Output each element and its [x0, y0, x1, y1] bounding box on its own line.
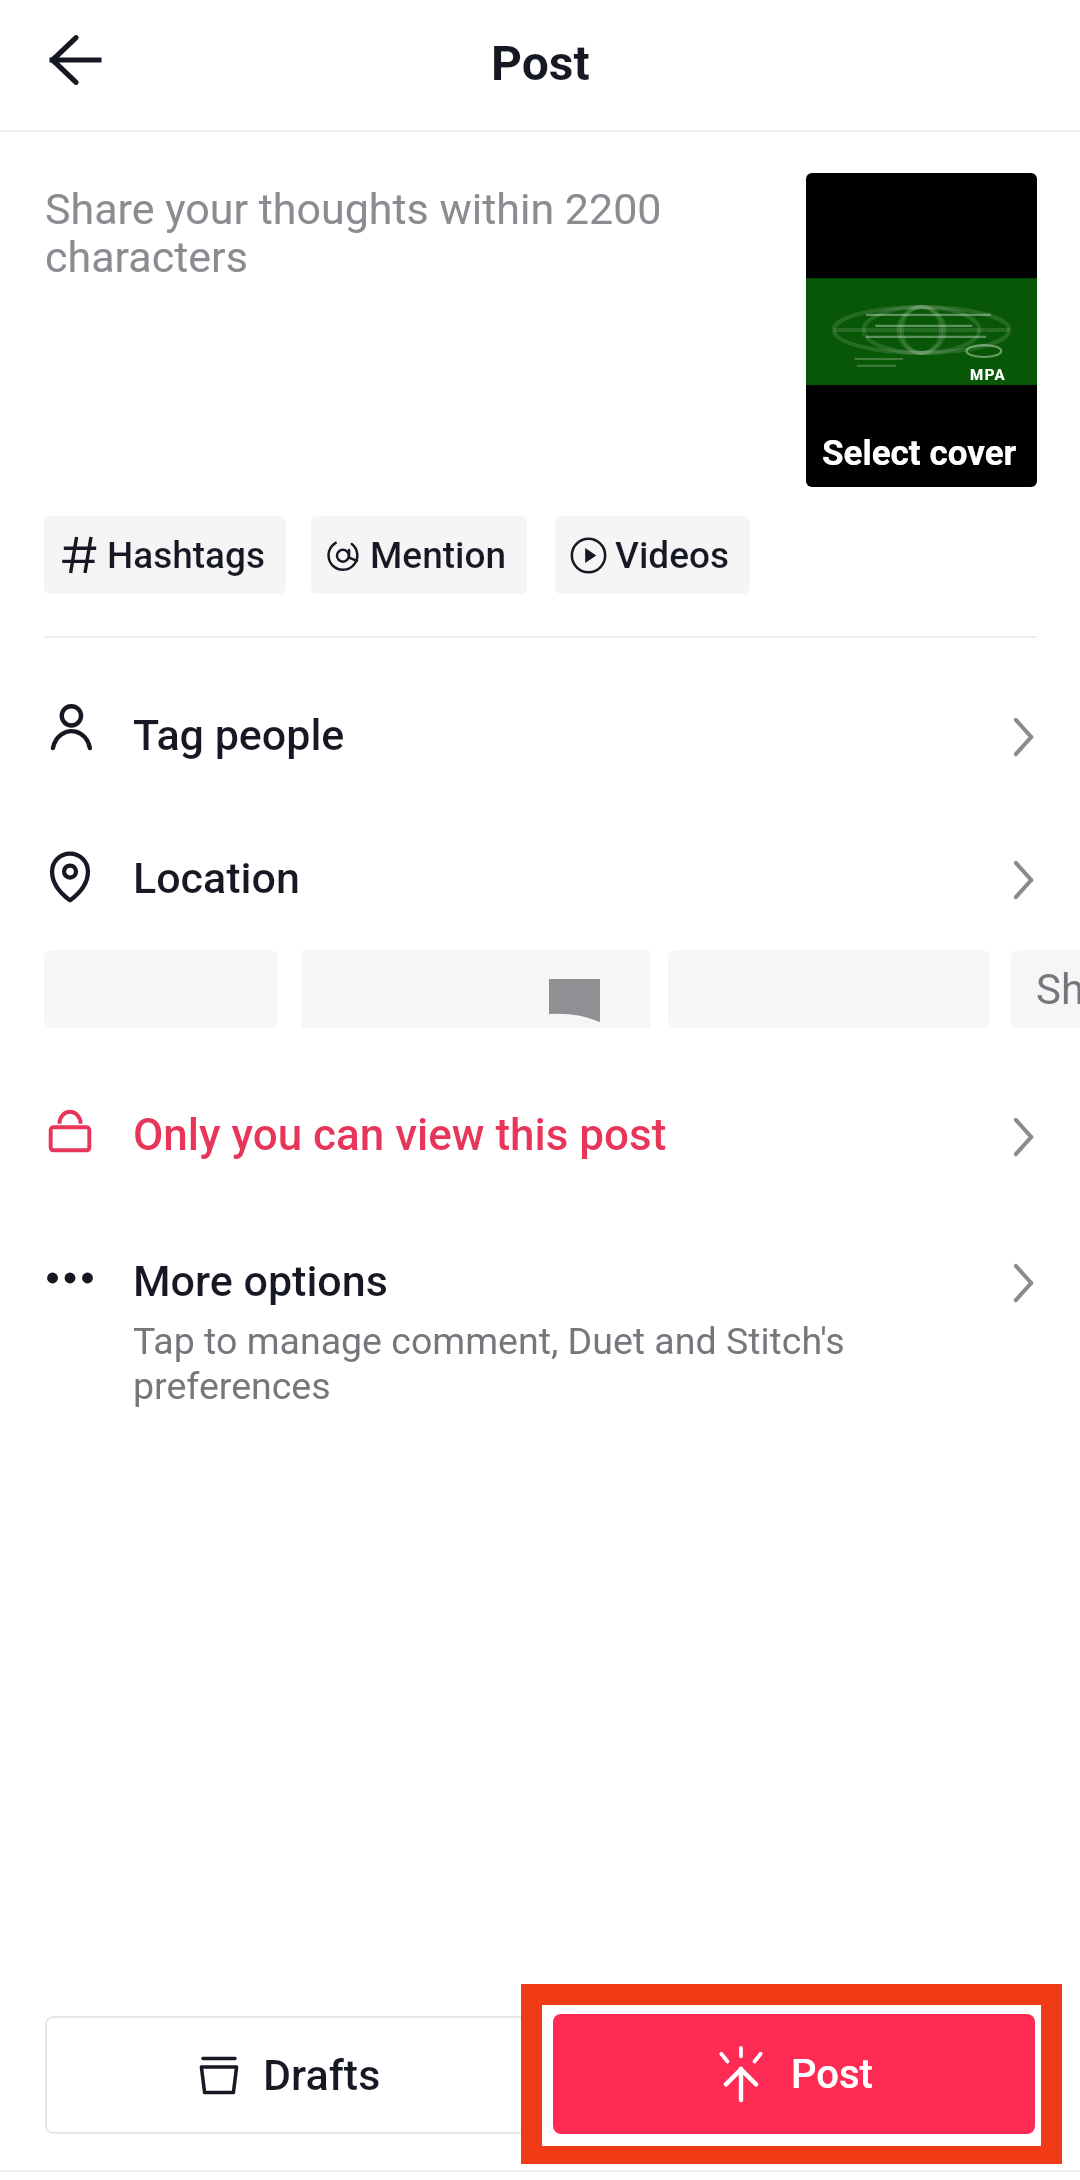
button[interactable]: Drafts	[45, 2016, 535, 2134]
button[interactable]: More options	[0, 1218, 1080, 1428]
staticText: Tag people	[133, 710, 345, 760]
staticText: Hashtags	[107, 534, 266, 577]
staticText: Location	[133, 853, 300, 903]
staticText: Post	[791, 2051, 873, 2098]
staticText: Share your thoughts within 2200 characte…	[45, 184, 713, 282]
button[interactable]: Only you can view this post	[0, 1072, 1080, 1198]
button[interactable]: Suggested option	[302, 950, 650, 1028]
button[interactable]: Hashtags	[44, 516, 286, 594]
staticText: Select cover	[822, 433, 1017, 474]
button[interactable]: Back	[26, 11, 124, 109]
staticText: Only you can view this post	[133, 1109, 667, 1161]
staticText: Post	[491, 35, 590, 91]
button[interactable]: Tag people	[0, 672, 1080, 798]
staticText: Drafts	[263, 2050, 381, 2100]
staticText: More options	[133, 1256, 388, 1306]
button[interactable]: Mention	[311, 516, 527, 594]
staticText: Tap to manage comment, Duet and Stitch's…	[133, 1319, 873, 1409]
button[interactable]: Videos	[555, 516, 750, 594]
button[interactable]: Post	[553, 2014, 1035, 2134]
staticText: Videos	[615, 534, 730, 577]
button[interactable]: Select cover	[806, 173, 1037, 487]
button[interactable]: Shi	[1011, 950, 1080, 1028]
staticText: Shi	[1036, 965, 1080, 1014]
button[interactable]: Location	[0, 815, 1080, 941]
staticText: MPA	[970, 366, 1007, 384]
staticText: Mention	[370, 534, 507, 577]
